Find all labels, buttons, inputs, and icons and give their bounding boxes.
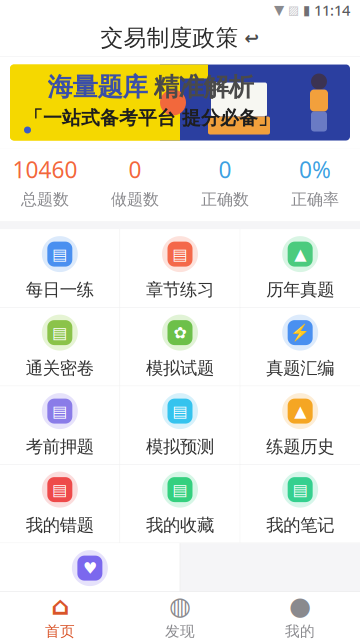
staticText: 0% [299, 154, 331, 185]
staticText: ▨ [284, 3, 303, 17]
staticText: 我的错题 [26, 515, 94, 536]
button[interactable]: ⚡ [240, 308, 360, 386]
staticText: ▲ [294, 245, 306, 263]
staticText: ⚡ [290, 323, 310, 342]
staticText: ♥ [83, 559, 97, 577]
button[interactable]: ▤ [0, 465, 120, 543]
button[interactable]: ▤ [120, 229, 240, 307]
staticText: 章节练习 [146, 279, 214, 300]
button[interactable]: ▲ [240, 386, 360, 464]
staticText: 11:14 [310, 0, 350, 20]
staticText: 我的笔记 [266, 515, 334, 536]
staticText: 交易制度政策 [100, 24, 238, 52]
staticText: 我的收藏 [146, 515, 214, 536]
staticText: 正确率 [291, 190, 339, 209]
staticText: ▤ [172, 245, 187, 263]
staticText: 我的 [285, 622, 315, 640]
staticText: ● [289, 592, 311, 620]
staticText: 模拟试题 [146, 358, 214, 379]
staticText: ✿ [173, 323, 186, 342]
staticText: 通关密卷 [26, 358, 94, 379]
button[interactable]: 海量题库 [10, 64, 350, 140]
staticText: 发现 [165, 622, 195, 640]
button[interactable]: ▤ [120, 386, 240, 464]
staticText: 精准解析 [153, 71, 253, 103]
button[interactable]: ▤ [0, 308, 120, 386]
staticText: ↩ [244, 28, 259, 48]
button[interactable]: ▲ [240, 229, 360, 307]
staticText: 0 [128, 154, 141, 185]
staticText: 总题数 [21, 190, 69, 209]
staticText: 历年真题 [266, 279, 334, 300]
staticText: ▮ [303, 2, 310, 17]
staticText: 海量题库 [47, 71, 147, 103]
staticText: ▼ [274, 2, 284, 17]
staticText: ▤ [52, 480, 67, 499]
staticText: ▤ [293, 480, 308, 499]
staticText: ▤ [52, 245, 67, 263]
button[interactable]: ▤ [0, 386, 120, 464]
staticText: 真题汇编 [266, 358, 334, 379]
staticText: 10460 [12, 154, 77, 185]
staticText: 练题历史 [266, 436, 334, 457]
staticText: ▲ [294, 402, 306, 420]
button[interactable]: ● [240, 592, 360, 640]
staticText: 会员中心 [56, 593, 124, 614]
staticText: ◍ [169, 592, 191, 620]
staticText: ▤ [52, 323, 67, 342]
button[interactable]: ⌂ [0, 592, 120, 640]
staticText: 考前押题 [26, 436, 94, 457]
staticText: 「一站式备考平台 提分必备」 [24, 107, 277, 129]
button[interactable]: ♥ [0, 543, 180, 621]
staticText: 正确数 [201, 190, 249, 209]
button[interactable]: ◍ [120, 592, 240, 640]
button[interactable]: ▤ [240, 465, 360, 543]
staticText: ▤ [52, 402, 67, 420]
staticText: ⌂ [51, 592, 69, 620]
button[interactable]: ▤ [120, 465, 240, 543]
staticText: 首页 [45, 622, 75, 640]
staticText: ▤ [172, 402, 187, 420]
staticText: 0 [218, 154, 231, 185]
staticText: 模拟预测 [146, 436, 214, 457]
staticText: 做题数 [111, 190, 159, 209]
staticText: ▤ [172, 480, 187, 499]
staticText: 每日一练 [26, 279, 94, 300]
button[interactable]: ▤ [0, 229, 120, 307]
button[interactable]: ✿ [120, 308, 240, 386]
